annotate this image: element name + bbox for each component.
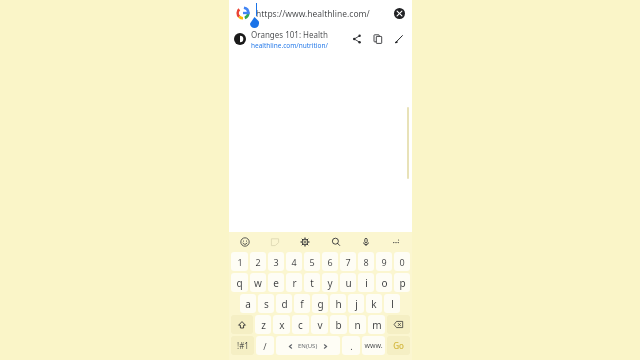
button[interactable]: 6 (322, 252, 338, 271)
button[interactable]: d (276, 294, 292, 313)
staticText: 5 (309, 256, 315, 268)
staticText: x (279, 318, 285, 332)
staticText: healthline.com/nutrition/orang… (251, 41, 348, 50)
button[interactable]: h (330, 294, 346, 313)
button[interactable]: Backspace (387, 315, 410, 334)
button[interactable]: Stickers (267, 234, 283, 250)
button[interactable]: u (340, 273, 356, 292)
button[interactable]: Voice input (358, 234, 374, 250)
staticText: d (281, 297, 288, 311)
staticText: c (298, 318, 303, 332)
staticText: w (254, 276, 262, 290)
button[interactable]: n (349, 315, 366, 334)
staticText: g (317, 297, 324, 311)
staticText: !#1 (237, 340, 249, 351)
button[interactable]: Share (348, 30, 366, 48)
staticText: q (236, 276, 243, 290)
button[interactable]: g (312, 294, 328, 313)
button[interactable]: Clear text (390, 4, 408, 22)
staticText: Go (393, 340, 404, 351)
staticText: i (365, 276, 368, 290)
button[interactable]: . (342, 336, 360, 355)
button[interactable]: c (292, 315, 309, 334)
staticText: . (350, 340, 353, 352)
staticText: https://www.healthline.com/nutrition/ora… (256, 8, 388, 20)
button[interactable]: More options (388, 234, 404, 250)
button[interactable]: Copy (369, 30, 387, 48)
staticText: b (335, 318, 342, 332)
button[interactable]: 3 (268, 252, 284, 271)
button[interactable]: !#1 (231, 336, 254, 355)
button[interactable]: t (304, 273, 320, 292)
staticText: t (310, 276, 314, 290)
staticText: r (292, 276, 297, 290)
button[interactable]: Edit (390, 30, 408, 48)
button[interactable]: Space (276, 336, 340, 355)
button[interactable]: Oranges 101: Health Bene… (234, 26, 408, 52)
staticText: e (273, 276, 279, 290)
staticText: www. (364, 341, 383, 351)
button[interactable]: k (366, 294, 382, 313)
button[interactable]: Search (328, 234, 344, 250)
button[interactable]: 4 (286, 252, 302, 271)
button[interactable]: Search engine (233, 3, 253, 23)
button[interactable]: e (268, 273, 284, 292)
staticText: / (263, 340, 267, 352)
button[interactable]: 7 (340, 252, 356, 271)
staticText: 1 (237, 256, 243, 268)
button[interactable]: z (255, 315, 271, 334)
button[interactable]: b (330, 315, 347, 334)
staticText: m (372, 318, 382, 332)
button[interactable]: q (231, 273, 248, 292)
staticText: 8 (363, 256, 369, 268)
button[interactable]: l (384, 294, 400, 313)
button[interactable]: 5 (304, 252, 320, 271)
button[interactable]: x (273, 315, 290, 334)
button[interactable]: / (256, 336, 274, 355)
button[interactable]: o (376, 273, 392, 292)
staticText: p (399, 276, 406, 290)
button[interactable]: 2 (250, 252, 266, 271)
staticText: a (245, 297, 251, 311)
staticText: 2 (255, 256, 261, 268)
staticText: 0 (399, 256, 405, 268)
staticText: Oranges 101: Health Bene… (251, 29, 348, 40)
staticText: n (354, 318, 361, 332)
staticText: v (317, 318, 323, 332)
button[interactable]: f (294, 294, 310, 313)
staticText: u (345, 276, 352, 290)
button[interactable]: Shift (231, 315, 253, 334)
staticText: 3 (273, 256, 279, 268)
button[interactable]: m (368, 315, 385, 334)
button[interactable]: p (394, 273, 410, 292)
button[interactable]: Emoji (237, 234, 253, 250)
button[interactable]: 1 (231, 252, 248, 271)
button[interactable]: www. (362, 336, 385, 355)
staticText: l (391, 297, 394, 311)
button[interactable]: v (311, 315, 328, 334)
button[interactable]: Go (387, 336, 410, 355)
button[interactable]: j (348, 294, 364, 313)
staticText: j (355, 297, 358, 311)
button[interactable]: r (286, 273, 302, 292)
staticText: f (300, 297, 304, 311)
button[interactable]: i (358, 273, 374, 292)
staticText: EN(US) (298, 342, 318, 350)
staticText: 7 (345, 256, 351, 268)
button[interactable]: 8 (358, 252, 374, 271)
button[interactable]: Settings (297, 234, 313, 250)
staticText: 4 (291, 256, 297, 268)
staticText: s (264, 297, 269, 311)
staticText: 6 (327, 256, 333, 268)
button[interactable]: y (322, 273, 338, 292)
staticText: y (327, 276, 333, 290)
staticText: z (261, 318, 266, 332)
staticText: h (335, 297, 342, 311)
button[interactable]: s (258, 294, 274, 313)
button[interactable]: 0 (394, 252, 410, 271)
button[interactable]: w (250, 273, 266, 292)
button[interactable]: a (240, 294, 256, 313)
button[interactable]: 9 (376, 252, 392, 271)
staticText: k (371, 297, 377, 311)
staticText: 9 (381, 256, 387, 268)
